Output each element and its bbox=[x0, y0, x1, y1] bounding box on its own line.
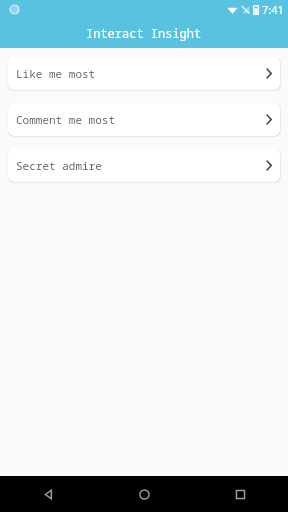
staticText: Secret admire bbox=[16, 158, 102, 173]
button[interactable]: Back bbox=[0, 476, 96, 512]
button[interactable]: Home bbox=[96, 476, 192, 512]
staticText: Comment me most bbox=[16, 112, 115, 127]
button[interactable]: Secret admire bbox=[8, 149, 280, 182]
button[interactable]: Comment me most bbox=[8, 103, 280, 136]
staticText: 7:41 bbox=[262, 2, 284, 17]
staticText: Interact Insight bbox=[86, 25, 202, 41]
staticText: Like me most bbox=[16, 66, 96, 81]
button[interactable]: Like me most bbox=[8, 57, 280, 90]
button[interactable]: Recent apps bbox=[192, 476, 288, 512]
